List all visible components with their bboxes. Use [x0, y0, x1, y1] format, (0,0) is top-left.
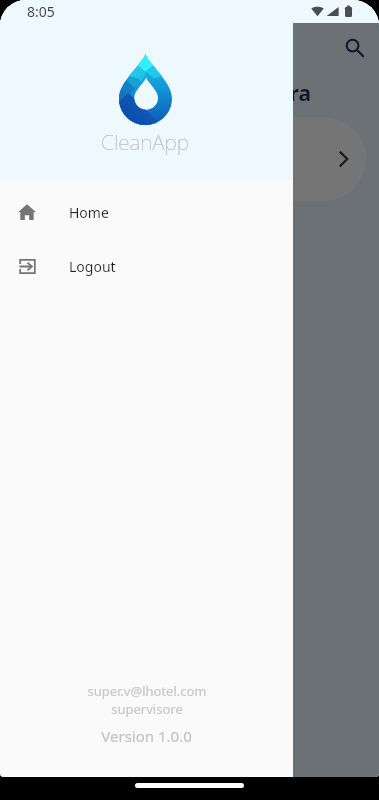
staticText: Struttura — [214, 79, 312, 108]
staticText: super.v@lhotel.com — [87, 682, 207, 700]
staticText: 8:05 — [27, 2, 55, 21]
staticText: Home — [69, 203, 109, 222]
button[interactable]: Home — [0, 190, 293, 234]
staticText: Version 1.0.0 — [101, 726, 192, 746]
button[interactable]: Search — [338, 31, 370, 63]
button[interactable]: Logout — [0, 244, 293, 288]
staticText: supervisore — [111, 700, 183, 718]
button[interactable] — [190, 117, 366, 201]
staticText: CleanApp — [101, 128, 189, 157]
staticText: Logout — [69, 257, 116, 276]
